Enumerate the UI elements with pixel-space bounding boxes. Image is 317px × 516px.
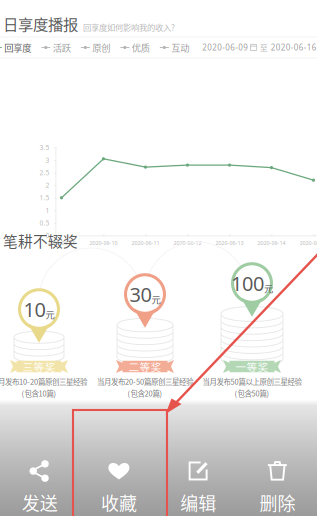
staticText: 当月发布20-50篇原创三星经验 bbox=[97, 376, 193, 387]
staticText: 2.5 bbox=[39, 168, 49, 177]
staticText: 删除 bbox=[259, 489, 295, 516]
staticText: 2020-06-09 bbox=[202, 42, 248, 53]
staticText: 100 bbox=[231, 270, 264, 296]
staticText: 2020-06-10 bbox=[89, 239, 117, 247]
staticText: 2020-06-15 bbox=[299, 239, 317, 247]
button[interactable]: 2020-06-09 bbox=[202, 39, 257, 55]
staticText: 发送 bbox=[22, 489, 58, 516]
staticText: 0.5 bbox=[39, 218, 49, 227]
staticText: 回享度如何影响我的收入? bbox=[83, 21, 175, 33]
staticText: 元 bbox=[151, 292, 160, 306]
button[interactable]: 活跃 bbox=[36, 38, 76, 56]
button[interactable]: 删除 bbox=[238, 457, 317, 516]
staticText: 10 bbox=[23, 296, 45, 322]
staticText: 2020-06-09 bbox=[47, 239, 75, 247]
staticText: 元 bbox=[45, 307, 54, 321]
staticText: 3.5 bbox=[39, 143, 49, 152]
staticText: 当月发布10-20篇原创三星经验 bbox=[0, 376, 87, 387]
staticText: 优质 bbox=[132, 41, 150, 54]
button[interactable]: 收藏 bbox=[79, 457, 158, 516]
staticText: 2020-06-16 bbox=[271, 42, 317, 53]
button[interactable]: 优质 bbox=[115, 38, 155, 56]
staticText: 一等奖 bbox=[235, 359, 268, 374]
staticText: 至 bbox=[260, 42, 268, 53]
staticText: 1.5 bbox=[39, 193, 49, 202]
staticText: 2020-06-13 bbox=[215, 239, 243, 247]
button[interactable]: 2020-06-16 bbox=[271, 39, 317, 55]
staticText: (包含10篇) bbox=[21, 388, 56, 399]
staticText: 活跃 bbox=[53, 41, 71, 54]
staticText: 互动 bbox=[171, 41, 189, 54]
staticText: 0 bbox=[45, 231, 49, 240]
staticText: 收藏 bbox=[101, 489, 137, 516]
staticText: 1 bbox=[45, 206, 49, 215]
staticText: 原创 bbox=[92, 41, 110, 54]
staticText: 回享度 bbox=[4, 41, 31, 54]
button[interactable]: 互动 bbox=[155, 38, 194, 56]
staticText: 2020-06-11 bbox=[131, 239, 159, 247]
button[interactable]: 回享度 bbox=[0, 38, 36, 56]
staticText: 日享度播报 bbox=[3, 12, 78, 35]
staticText: 笔耕不辍奖 bbox=[3, 230, 78, 251]
staticText: 2 bbox=[45, 181, 49, 190]
staticText: 编辑 bbox=[180, 489, 216, 516]
staticText: 三等奖 bbox=[22, 359, 55, 374]
staticText: 二等奖 bbox=[128, 359, 161, 374]
staticText: 30 bbox=[129, 281, 151, 307]
staticText: 当月发布50篇以上原创三星经验 bbox=[202, 376, 301, 387]
staticText: 2020-06-12 bbox=[173, 239, 201, 247]
button[interactable]: 发送 bbox=[0, 457, 79, 516]
staticText: 2020-06-14 bbox=[257, 239, 285, 247]
button[interactable]: 编辑 bbox=[158, 457, 238, 516]
button[interactable]: 原创 bbox=[76, 38, 115, 56]
staticText: 元 bbox=[264, 281, 273, 295]
staticText: 3 bbox=[45, 156, 49, 164]
staticText: (包含50篇) bbox=[234, 388, 269, 399]
staticText: (包含20篇) bbox=[127, 388, 162, 399]
